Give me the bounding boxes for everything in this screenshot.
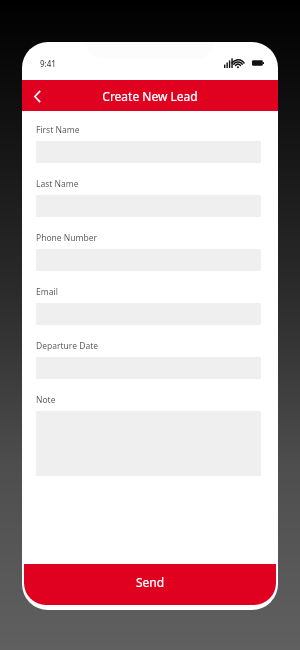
staticText: Departure Date [36,340,99,352]
staticText: Last Name [36,178,79,190]
staticText: First Name [36,124,80,136]
button[interactable]: Send [24,564,276,605]
staticText: Send [136,574,165,590]
staticText: Note [36,394,56,406]
staticText: Phone Number [36,232,97,244]
staticText: Create New Lead [102,88,198,104]
staticText: 9:41 [40,58,56,69]
button[interactable]: Back [22,81,52,111]
staticText: Email [36,286,58,298]
